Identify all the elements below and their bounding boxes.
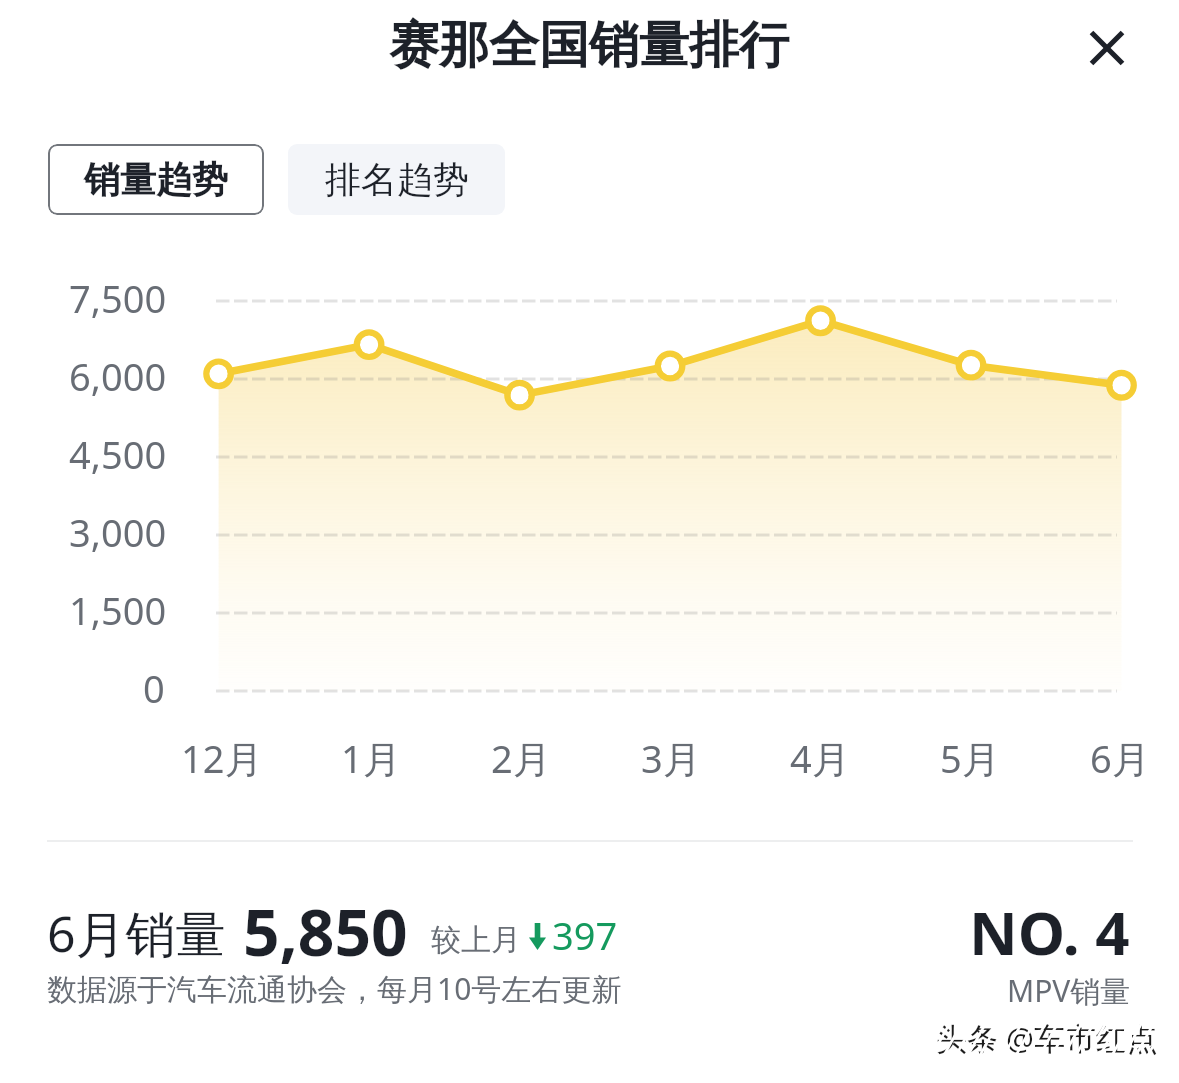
staticText: 1,500	[69, 584, 167, 636]
staticText: 4月	[790, 732, 850, 784]
staticText: 6月	[1090, 732, 1150, 784]
staticText: 3,000	[69, 506, 167, 558]
staticText: 5月	[940, 732, 1000, 784]
staticText: 0	[143, 662, 165, 714]
staticText: 3月	[641, 732, 701, 784]
staticText: 6,000	[69, 350, 167, 402]
staticText: 12月	[181, 732, 263, 784]
staticText: 397	[552, 909, 618, 961]
staticText: 5,850	[243, 888, 408, 975]
staticText: 7,500	[69, 272, 167, 324]
staticText: 数据源于汽车流通协会，每月10号左右更新	[47, 968, 622, 1009]
staticText: NO. 4	[969, 891, 1130, 973]
button[interactable]: 销量趋势	[48, 144, 264, 215]
staticText: 赛那全国销量排行	[389, 14, 789, 77]
button[interactable]: Close	[1075, 16, 1139, 80]
button[interactable]: 排名趋势	[288, 144, 505, 215]
staticText: 销量趋势	[84, 157, 228, 202]
staticText: 1月	[341, 732, 401, 784]
staticText: 4,500	[69, 428, 167, 480]
staticText: 6月销量	[47, 899, 226, 967]
staticText: 较上月	[431, 921, 521, 959]
staticText: 排名趋势	[325, 157, 469, 202]
staticText: MPV销量	[1007, 970, 1131, 1011]
staticText: 2月	[491, 732, 551, 784]
staticText: 头条 @车市红点	[936, 1017, 1158, 1059]
